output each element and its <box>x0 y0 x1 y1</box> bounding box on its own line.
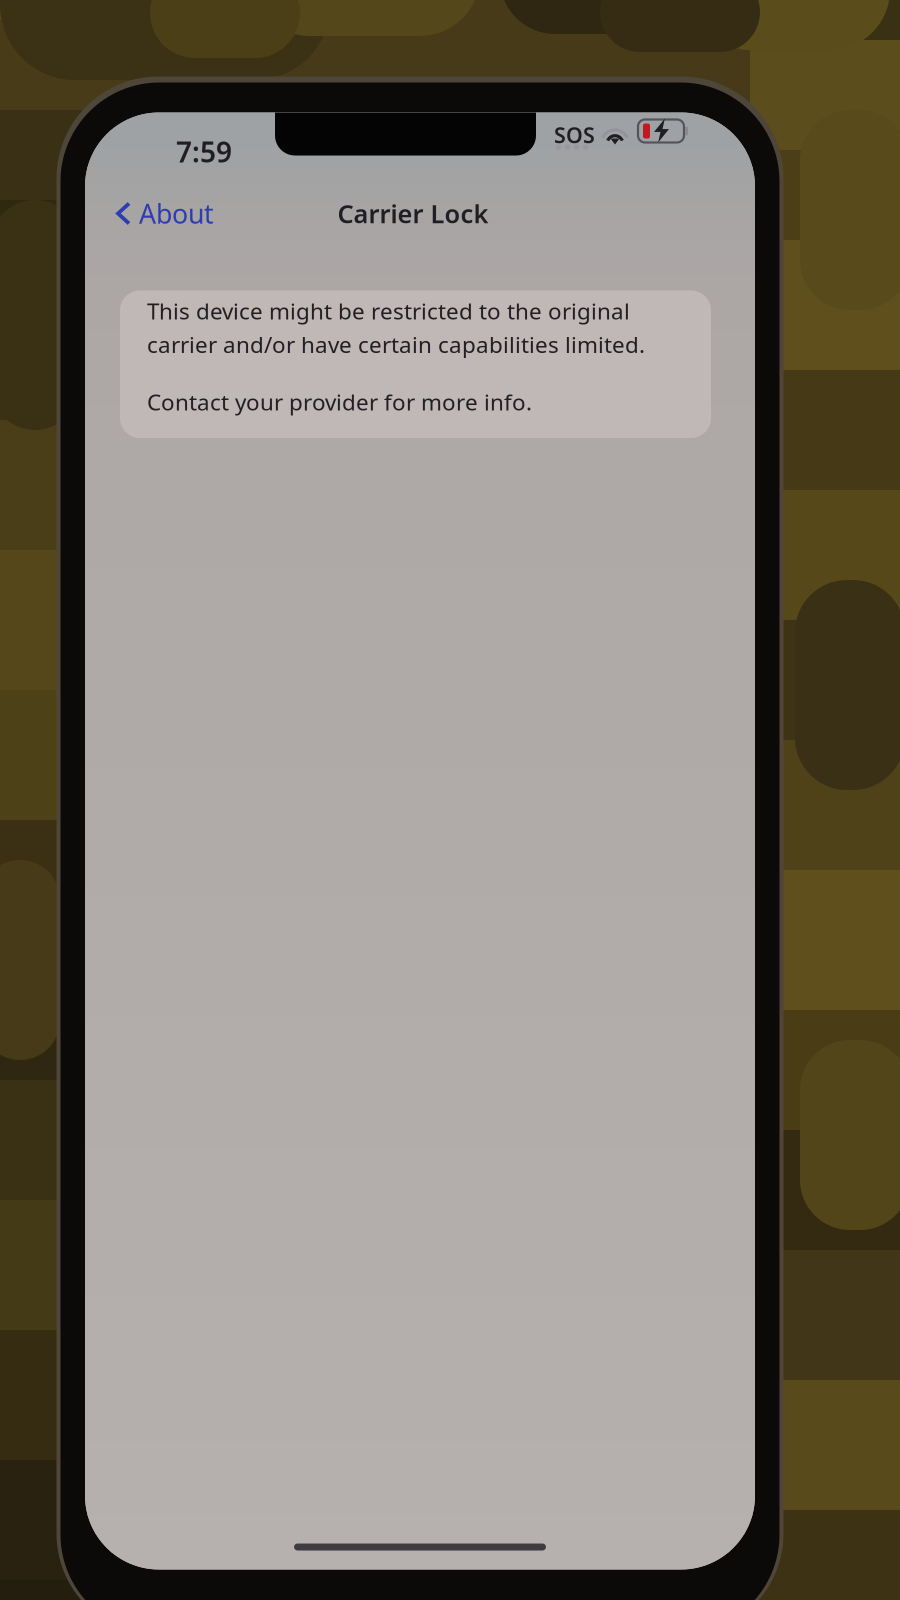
staticText: SOS <box>554 120 595 150</box>
staticText: 7:59 <box>176 132 232 171</box>
staticText: carrier and/or have certain capabilities… <box>147 329 645 359</box>
staticText: Carrier Lock <box>337 197 488 230</box>
staticText: Contact your provider for more info. <box>147 386 532 417</box>
button[interactable]: About <box>85 184 230 243</box>
staticText: About <box>139 196 214 231</box>
staticText: This device might be restricted to the o… <box>147 295 630 326</box>
